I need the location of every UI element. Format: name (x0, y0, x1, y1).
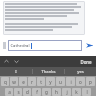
button[interactable]: Cathedral (8, 40, 82, 51)
staticText: l (86, 89, 88, 95)
staticText: r (31, 79, 33, 85)
staticText: Cathedral (10, 43, 30, 49)
button[interactable]: a (5, 88, 13, 96)
button[interactable]: u (56, 77, 65, 86)
staticText: g (45, 89, 48, 95)
button[interactable] (5, 3, 83, 33)
staticText: yes (77, 69, 84, 75)
staticText: q (4, 79, 7, 85)
button[interactable]: e (19, 77, 27, 86)
button[interactable]: o (76, 77, 85, 86)
button[interactable]: g (42, 88, 51, 96)
button[interactable]: Send (85, 41, 94, 50)
staticText: e (22, 79, 25, 85)
staticText: p (89, 79, 92, 85)
button[interactable]: f (32, 88, 41, 96)
button[interactable]: w (10, 77, 18, 86)
staticText: j (66, 89, 68, 95)
staticText: i (70, 79, 72, 85)
button[interactable]: Thanks (33, 67, 64, 76)
staticText: y (49, 79, 52, 85)
button[interactable]: r (28, 77, 36, 86)
button[interactable]: yes (65, 67, 96, 76)
staticText: a (8, 89, 11, 95)
button[interactable]: l (82, 88, 91, 96)
staticText: k (75, 89, 78, 95)
staticText: t (40, 79, 42, 85)
staticText: f (36, 89, 38, 95)
button[interactable]: h (52, 88, 61, 96)
button[interactable]: k (72, 88, 81, 96)
button[interactable]: q (1, 77, 9, 86)
staticText: h (55, 89, 58, 95)
button[interactable]: Next field (13, 58, 20, 65)
staticText: Done (80, 59, 92, 65)
button[interactable]: d (23, 88, 31, 96)
button[interactable]: i (66, 77, 75, 86)
button[interactable]: s (14, 88, 22, 96)
button[interactable]: Previous field (3, 58, 10, 65)
button[interactable]: y (46, 77, 55, 86)
staticText: Thanks (41, 69, 56, 75)
button[interactable]: p (86, 77, 95, 86)
button[interactable]: I (0, 67, 32, 76)
staticText: u (59, 79, 62, 85)
staticText: w (12, 79, 16, 85)
staticText: s (17, 89, 20, 95)
button[interactable]: t (37, 77, 45, 86)
staticText: d (26, 89, 29, 95)
staticText: I (15, 69, 17, 75)
button[interactable]: j (62, 88, 71, 96)
button[interactable]: Done (79, 58, 93, 66)
staticText: o (79, 79, 82, 85)
